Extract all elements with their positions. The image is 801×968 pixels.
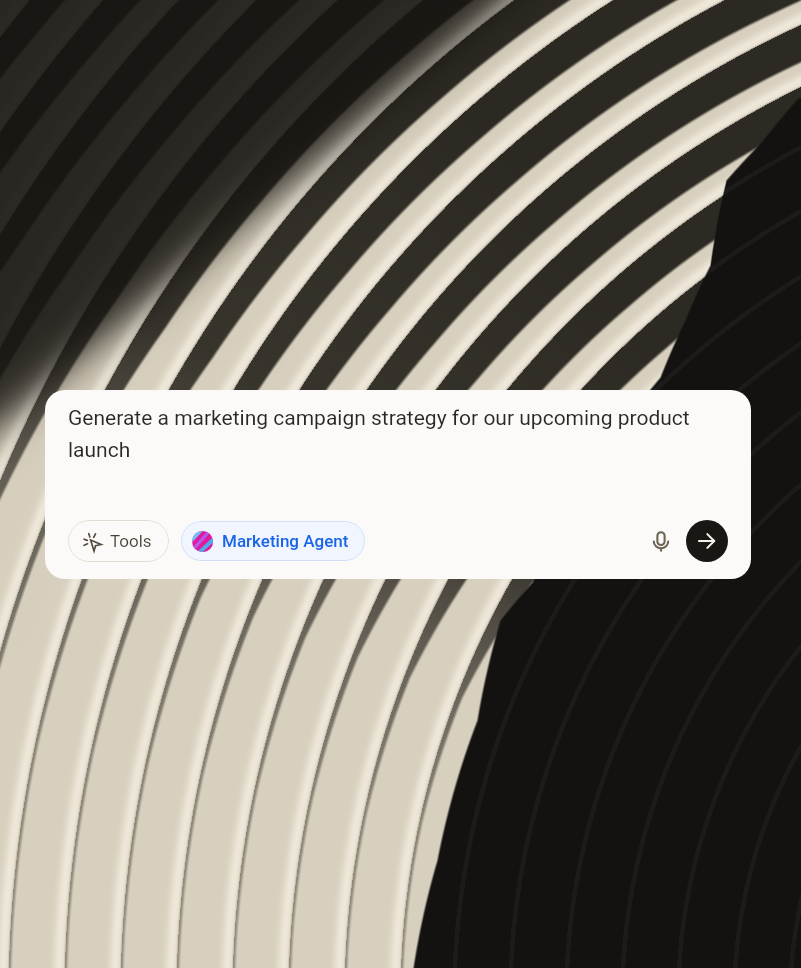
staticText: Tools xyxy=(110,531,152,551)
button[interactable]: Tools xyxy=(68,520,169,562)
button[interactable]: Voice input xyxy=(641,521,681,561)
staticText: Marketing Agent xyxy=(222,531,349,551)
button[interactable]: Marketing Agent xyxy=(181,521,365,561)
button[interactable]: Send xyxy=(686,520,728,562)
staticText: Generate a marketing campaign strategy f… xyxy=(68,406,728,462)
